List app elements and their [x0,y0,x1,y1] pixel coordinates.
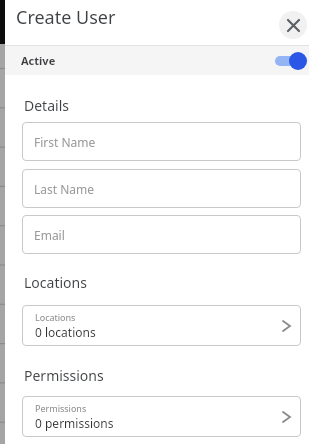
button[interactable]: Active [5,46,309,75]
staticText: Permissions [24,366,104,385]
button[interactable]: Last Name [22,169,301,208]
button[interactable]: First Name [22,122,301,161]
staticText: Locations [24,273,87,292]
button[interactable] [279,11,307,39]
button[interactable]: Email [22,215,301,254]
staticText: 0 permissions [35,415,114,431]
staticText: First Name [34,134,96,150]
button[interactable]: Permissions [22,396,301,437]
staticText: Details [24,96,69,115]
staticText: Create User [16,5,116,30]
staticText: Last Name [34,181,95,197]
staticText: Permissions [35,402,87,414]
staticText: Locations [35,311,76,323]
staticText: Active [21,53,56,68]
button[interactable]: Locations [22,305,301,346]
staticText: Email [34,227,65,243]
staticText: 0 locations [35,324,96,340]
